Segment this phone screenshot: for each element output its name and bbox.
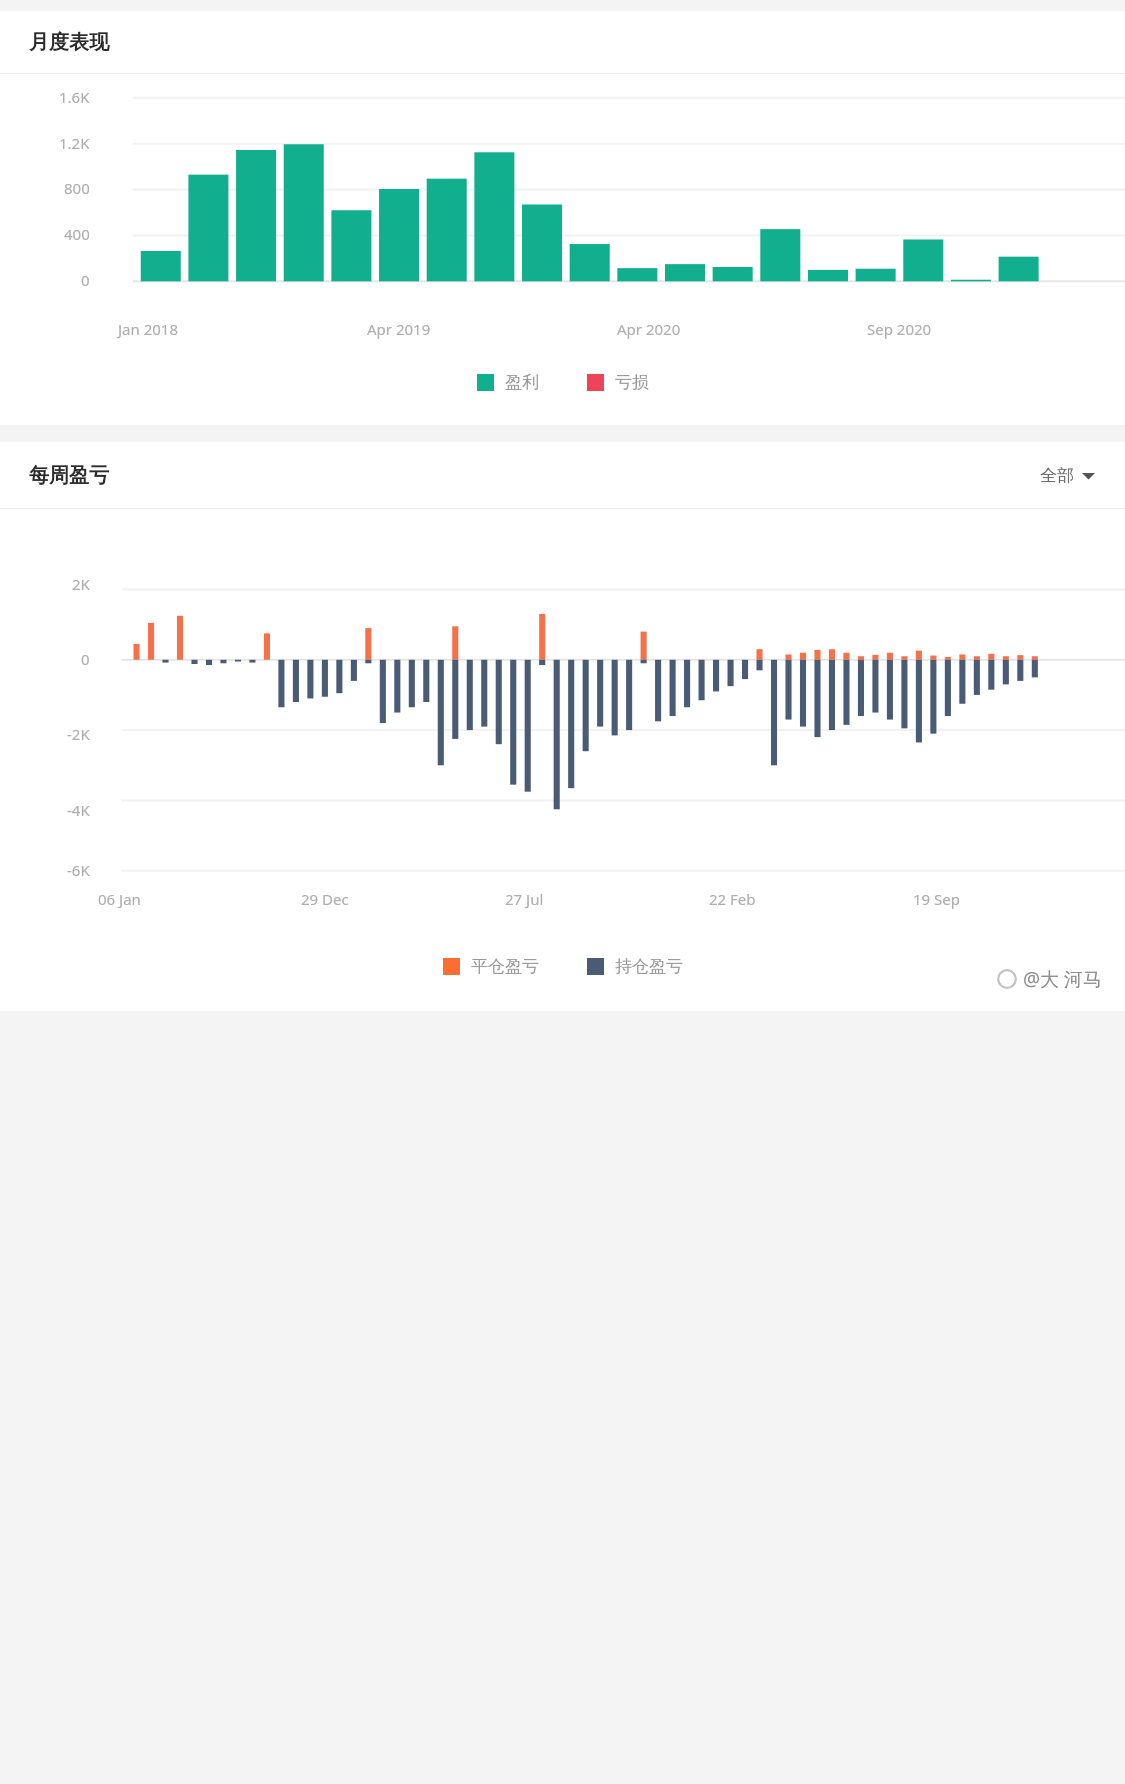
staticText: 1.6K (59, 87, 90, 107)
staticText: 0 (81, 649, 90, 669)
staticText: 月度表现 (29, 30, 109, 55)
staticText: 800 (64, 178, 90, 198)
staticText: Sep 2020 (867, 319, 932, 339)
button[interactable]: 亏损 (583, 366, 653, 399)
staticText: Apr 2019 (367, 319, 431, 339)
staticText: @大 河马 (1023, 966, 1103, 992)
staticText: -6K (67, 860, 90, 880)
staticText: 2K (72, 574, 90, 594)
staticText: Jan 2018 (118, 319, 179, 339)
staticText: 全部 (1040, 465, 1074, 486)
button[interactable]: 每周盈亏 (0, 442, 1125, 508)
staticText: 持仓盈亏 (615, 956, 683, 977)
staticText: 0 (81, 270, 90, 290)
staticText: 19 Sep (913, 889, 960, 909)
staticText: 06 Jan (98, 889, 141, 909)
staticText: -4K (67, 800, 90, 820)
staticText: 400 (64, 224, 90, 244)
staticText: 亏损 (615, 372, 649, 393)
button[interactable]: 全部 (1034, 457, 1101, 494)
button[interactable]: 平仓盈亏 (439, 950, 543, 983)
button[interactable]: 盈利 (473, 366, 543, 399)
staticText: 每周盈亏 (29, 463, 109, 488)
staticText: 平仓盈亏 (471, 956, 539, 977)
staticText: Apr 2020 (617, 319, 681, 339)
staticText: -2K (67, 724, 90, 744)
button[interactable]: 持仓盈亏 (583, 950, 687, 983)
staticText: 22 Feb (709, 889, 756, 909)
staticText: 29 Dec (301, 889, 349, 909)
staticText: 27 Jul (505, 889, 544, 909)
other: 筛选 (1082, 469, 1095, 482)
button[interactable]: 月度表现 (0, 11, 1125, 73)
staticText: 盈利 (505, 372, 539, 393)
staticText: 1.2K (59, 133, 90, 153)
